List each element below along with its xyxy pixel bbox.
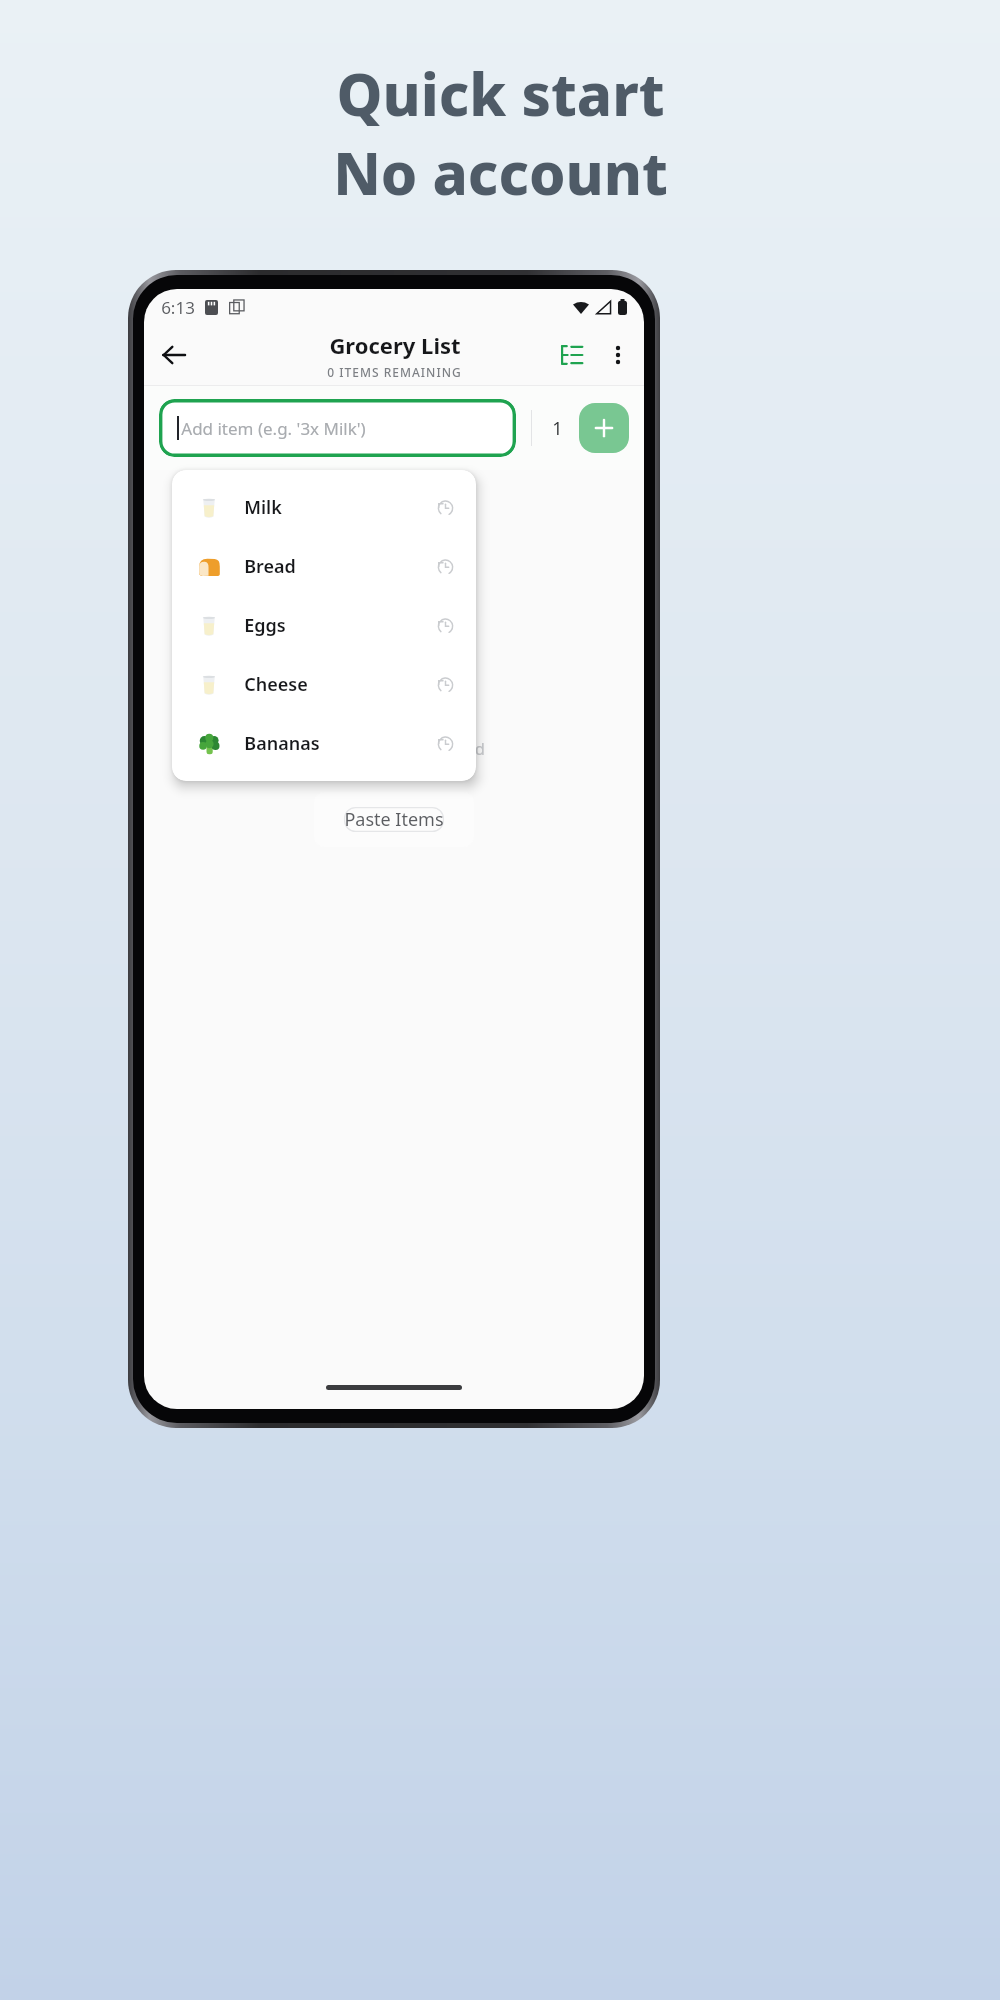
staticText: Grocery List bbox=[329, 330, 461, 360]
button[interactable]: Bread bbox=[172, 537, 476, 596]
button[interactable]: More options bbox=[595, 332, 641, 378]
staticText: 0 ITEMS REMAINING bbox=[327, 364, 462, 380]
button[interactable]: Eggs bbox=[172, 596, 476, 655]
staticText: Add items to get started bbox=[303, 738, 485, 760]
staticText: 6:13 bbox=[161, 296, 195, 319]
button[interactable]: Cheese bbox=[172, 655, 476, 714]
button[interactable]: Milk bbox=[172, 478, 476, 537]
button[interactable]: Add item bbox=[579, 403, 629, 453]
staticText: Quick start bbox=[336, 54, 665, 133]
other: Recent bbox=[437, 735, 454, 752]
staticText: Milk bbox=[244, 495, 282, 520]
other: Recent bbox=[437, 676, 454, 693]
button[interactable]: Back bbox=[150, 331, 198, 379]
other: Recent bbox=[437, 499, 454, 516]
staticText: Add item (e.g. '3x Milk') bbox=[181, 417, 366, 440]
button[interactable]: Bananas bbox=[172, 714, 476, 773]
staticText: No account bbox=[333, 133, 668, 212]
staticText: Eggs bbox=[244, 613, 286, 638]
button[interactable]: Paste Items bbox=[314, 792, 474, 847]
staticText: Paste Items bbox=[344, 807, 444, 832]
button[interactable]: Add item (e.g. '3x Milk') bbox=[159, 399, 516, 457]
other: Recent bbox=[437, 558, 454, 575]
button[interactable]: Sort list bbox=[549, 332, 595, 378]
button[interactable]: 1 bbox=[546, 416, 568, 441]
staticText: Cheese bbox=[244, 672, 308, 697]
other: Recent bbox=[437, 617, 454, 634]
staticText: 1 bbox=[552, 416, 563, 441]
staticText: Bananas bbox=[244, 731, 320, 756]
staticText: Bread bbox=[244, 554, 296, 579]
